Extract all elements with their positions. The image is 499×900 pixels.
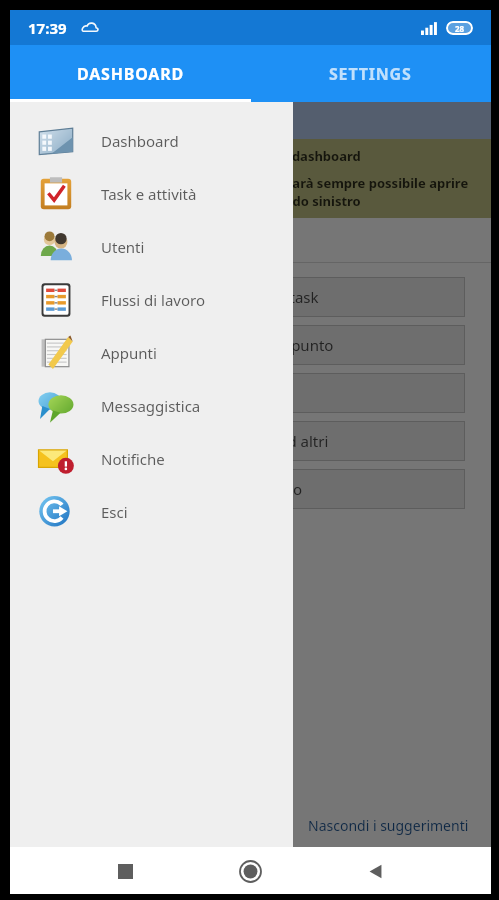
staticText: Task e attività: [101, 184, 197, 204]
button[interactable]: Recent apps: [102, 848, 148, 894]
button[interactable]: Back: [352, 848, 398, 894]
staticText: Flussi di lavoro: [101, 290, 206, 310]
staticText: Utenti: [101, 237, 145, 257]
button[interactable]: Task e attività: [10, 167, 293, 220]
button[interactable]: DASHBOARD: [10, 45, 250, 102]
staticText: Notifiche: [101, 449, 165, 469]
button[interactable]: SETTINGS: [250, 45, 491, 102]
staticText: Flussi di lavoro: [198, 479, 303, 499]
button[interactable]: Appunti: [10, 326, 293, 379]
staticText: Dashboard: [101, 131, 179, 151]
button[interactable]: Home: [227, 848, 273, 894]
button[interactable]: Flussi di lavoro: [36, 469, 465, 509]
button[interactable]: Flussi di lavoro: [10, 273, 293, 326]
button[interactable]: Utenti: [10, 220, 293, 273]
staticText: menu: [41, 110, 87, 132]
button[interactable]: Crea un nuovo appunto: [36, 325, 465, 365]
staticText: Questa è la schermata per visualizzare l…: [24, 147, 361, 165]
staticText: 17:39: [28, 18, 67, 38]
button[interactable]: Messaggistica: [10, 379, 293, 432]
staticText: Nascondi i suggerimenti: [308, 816, 469, 835]
staticText: Esci: [101, 502, 128, 522]
button[interactable]: Esci: [10, 485, 293, 538]
staticText: Task assegnati ad altri: [173, 431, 329, 451]
staticText: Crea un nuovo task: [183, 287, 319, 307]
button[interactable]: I miei task: [36, 373, 465, 413]
button[interactable]: Notifiche: [10, 432, 293, 485]
staticText: Appunti: [101, 343, 157, 363]
staticText: 28: [455, 23, 465, 34]
staticText: DASHBOARD: [77, 63, 184, 85]
button[interactable]: Nascondi i suggerimenti: [304, 812, 473, 839]
staticText: Crea un nuovo appunto: [167, 335, 334, 355]
staticText: Messaggistica: [101, 396, 201, 416]
button[interactable]: Task assegnati ad altri: [36, 421, 465, 461]
button[interactable]: Dashboard: [10, 114, 293, 167]
staticText: SETTINGS: [329, 63, 412, 85]
button[interactable]: Crea un nuovo task: [36, 277, 465, 317]
staticText: Anche se hai nascosto il pulsante menù, …: [24, 174, 477, 210]
